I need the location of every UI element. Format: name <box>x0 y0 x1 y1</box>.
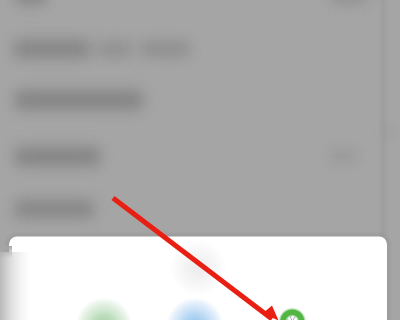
button[interactable]: Share with app <box>0 0 400 320</box>
button[interactable]: Dismiss share sheet <box>0 0 400 320</box>
